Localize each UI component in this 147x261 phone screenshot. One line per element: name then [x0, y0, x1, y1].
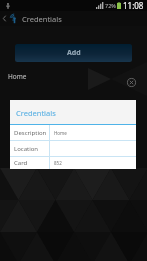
staticText: 11:08	[123, 0, 144, 11]
button[interactable]: Delete	[127, 78, 136, 87]
button[interactable]: Home	[0, 66, 147, 90]
button[interactable]: Navigate up	[0, 11, 9, 26]
staticText: 852	[54, 160, 62, 166]
button[interactable]: Location	[10, 141, 136, 156]
staticText: Card	[14, 159, 28, 167]
button[interactable]: Add	[15, 44, 132, 62]
staticText: Add	[67, 48, 81, 58]
button[interactable]: Description	[10, 125, 136, 140]
staticText: Credentials	[16, 108, 56, 118]
staticText: 72%	[105, 2, 116, 9]
staticText: Home	[8, 72, 27, 81]
button[interactable]: Card	[10, 157, 136, 169]
staticText: Home	[54, 130, 67, 136]
staticText: Credentials	[22, 14, 62, 24]
staticText: Description	[14, 129, 47, 137]
staticText: Location	[14, 145, 39, 153]
